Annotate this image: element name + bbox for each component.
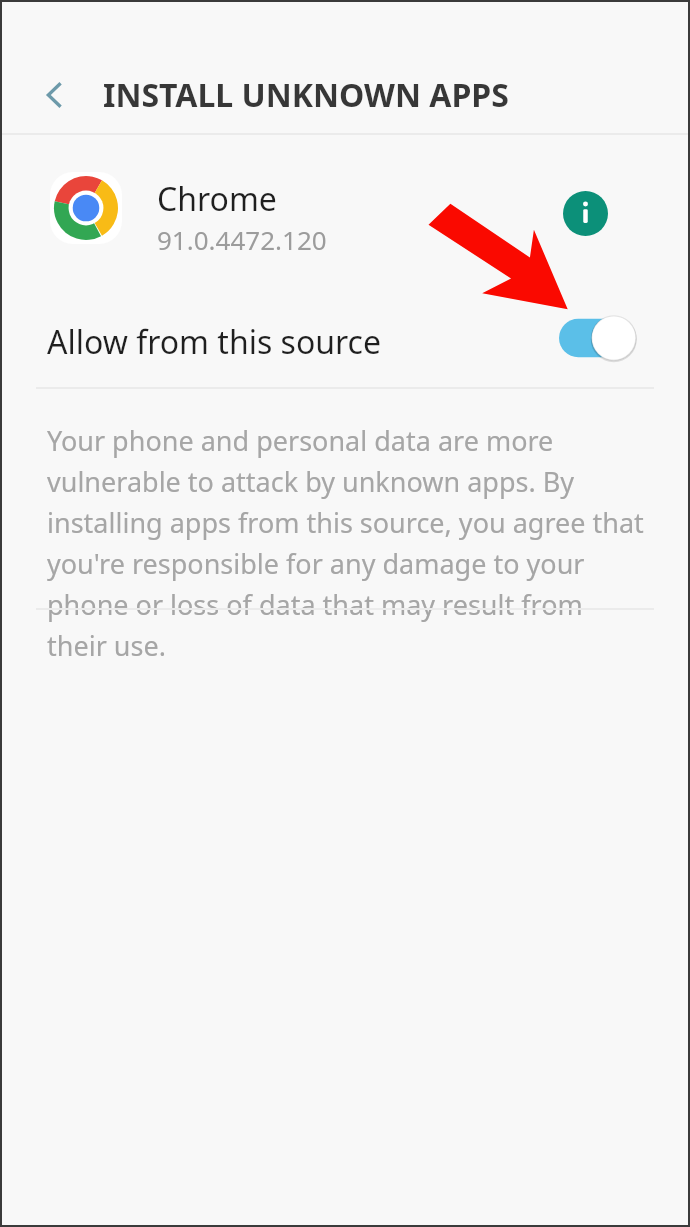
button[interactable]: Allow from this source <box>550 302 664 374</box>
staticText: INSTALL UNKNOWN APPS <box>103 73 509 117</box>
button[interactable]: App info <box>542 170 628 256</box>
staticText: Chrome <box>157 177 277 221</box>
staticText: 91.0.4472.120 <box>157 222 327 257</box>
button[interactable]: Navigate up <box>26 66 84 124</box>
staticText: Allow from this source <box>47 320 382 364</box>
staticText: Your phone and personal data are more vu… <box>47 422 648 664</box>
